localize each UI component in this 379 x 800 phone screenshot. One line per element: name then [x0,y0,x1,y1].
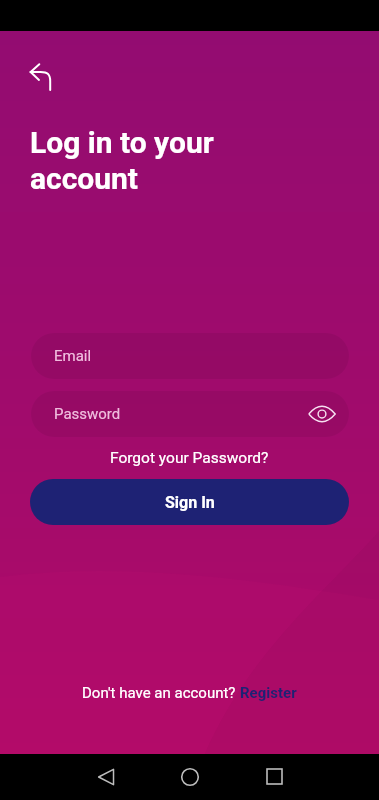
button[interactable]: Forgot your Password? [104,446,275,470]
button[interactable]: Show password [304,396,340,432]
button[interactable]: Recent apps [257,759,292,794]
staticText: Sign In [165,493,215,512]
button[interactable]: Register [240,684,297,702]
button[interactable]: Sign In [30,479,349,525]
button[interactable]: Home [172,759,207,794]
button[interactable]: Password [31,391,349,437]
staticText: Log in to your account [30,125,214,196]
staticText: Forgot your Password? [110,449,269,467]
button[interactable]: Back [22,61,60,99]
staticText: Register [240,684,297,702]
button[interactable]: Back [88,759,123,794]
staticText: Password [54,405,121,423]
staticText: Email [54,347,92,365]
button[interactable]: Email [31,333,349,379]
staticText: Don't have an account? [82,684,240,702]
